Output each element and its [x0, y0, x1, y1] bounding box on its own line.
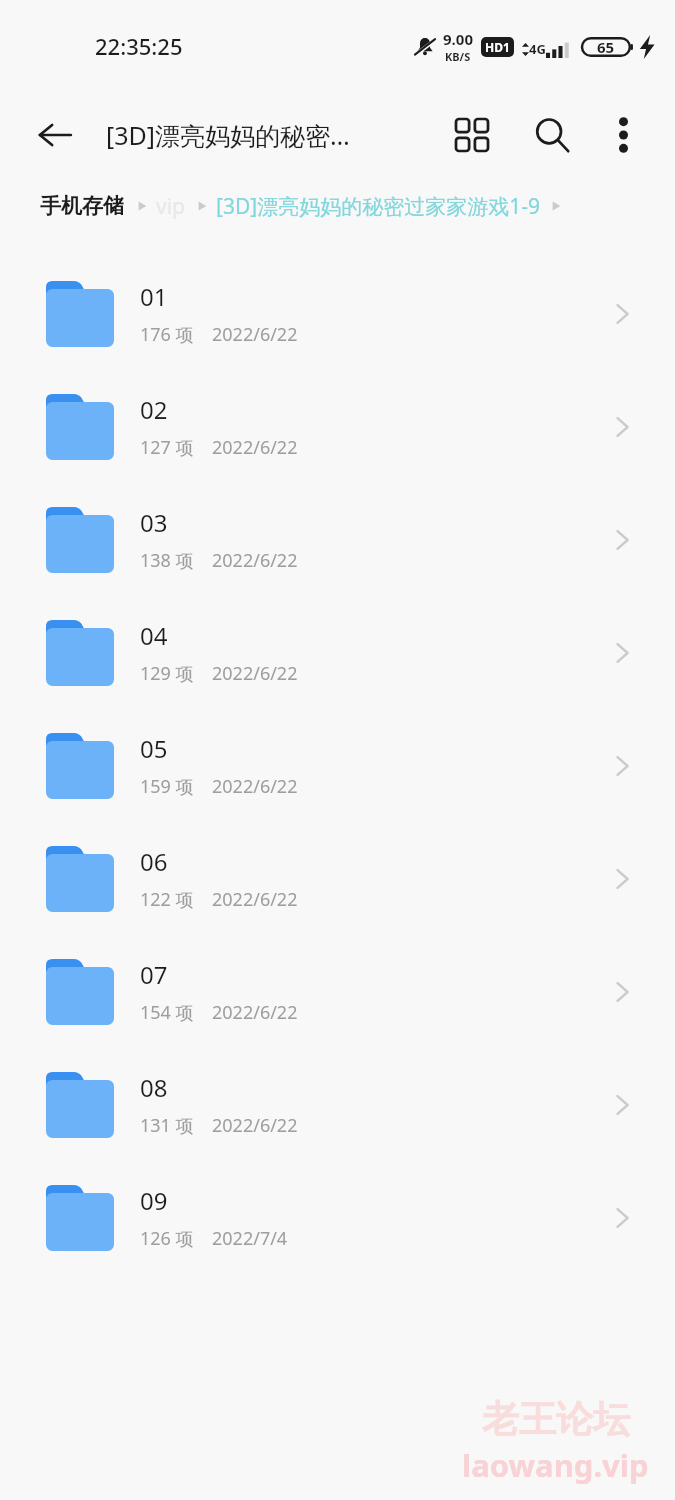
button[interactable]: Back — [28, 108, 82, 162]
staticText: 129 项 — [140, 661, 194, 686]
staticText: [3D]漂亮妈妈的秘密… — [106, 118, 443, 152]
button[interactable]: 07 — [0, 935, 675, 1048]
staticText: 65 — [597, 37, 615, 57]
button[interactable]: vip — [156, 192, 186, 221]
button[interactable]: 02 — [0, 370, 675, 483]
staticText: 01 — [140, 280, 168, 313]
staticText: 9.00 — [443, 29, 473, 49]
staticText: 2022/6/22 — [212, 435, 298, 460]
staticText: 06 — [140, 845, 168, 878]
staticText: 2022/6/22 — [212, 1113, 298, 1138]
staticText: vip — [156, 192, 186, 221]
button[interactable]: [3D]漂亮妈妈的秘密过家家游戏1-9 — [216, 192, 540, 221]
button[interactable]: 04 — [0, 596, 675, 709]
staticText: 2022/6/22 — [212, 1000, 298, 1025]
button[interactable]: 03 — [0, 483, 675, 596]
button[interactable]: More options — [597, 109, 649, 161]
staticText: 04 — [140, 619, 168, 652]
staticText: 2022/6/22 — [212, 774, 298, 799]
button[interactable]: 08 — [0, 1048, 675, 1161]
staticText: 05 — [140, 732, 168, 765]
staticText: 2022/6/22 — [212, 322, 298, 347]
button[interactable]: 01 — [0, 257, 675, 370]
button[interactable]: Search — [523, 106, 581, 164]
staticText: 159 项 — [140, 774, 194, 799]
staticText: 08 — [140, 1071, 168, 1104]
staticText: 22:35:25 — [95, 31, 183, 61]
staticText: HD1 — [485, 39, 510, 55]
staticText: 154 项 — [140, 1000, 194, 1025]
staticText: KB/S — [445, 49, 471, 64]
staticText: 03 — [140, 506, 168, 539]
button[interactable]: 05 — [0, 709, 675, 822]
staticText: 2022/6/22 — [212, 887, 298, 912]
staticText: 2022/7/4 — [212, 1226, 288, 1251]
staticText: 131 项 — [140, 1113, 194, 1138]
staticText: 02 — [140, 393, 168, 426]
staticText: laowang.vip — [462, 1444, 649, 1486]
staticText: 老王论坛 — [482, 1396, 630, 1443]
staticText: 手机存储 — [40, 193, 124, 219]
staticText: 2022/6/22 — [212, 661, 298, 686]
staticText: 2022/6/22 — [212, 548, 298, 573]
staticText: 138 项 — [140, 548, 194, 573]
staticText: 127 项 — [140, 435, 194, 460]
button[interactable]: Grid view — [443, 106, 501, 164]
staticText: 176 项 — [140, 322, 194, 347]
staticText: 126 项 — [140, 1226, 194, 1251]
button[interactable]: 06 — [0, 822, 675, 935]
staticText: 09 — [140, 1184, 168, 1217]
staticText: [3D]漂亮妈妈的秘密过家家游戏1-9 — [216, 192, 540, 221]
button[interactable]: 手机存储 — [40, 193, 124, 219]
staticText: 4G — [529, 40, 546, 58]
staticText: 07 — [140, 958, 168, 991]
button[interactable]: 09 — [0, 1161, 675, 1274]
staticText: 122 项 — [140, 887, 194, 912]
